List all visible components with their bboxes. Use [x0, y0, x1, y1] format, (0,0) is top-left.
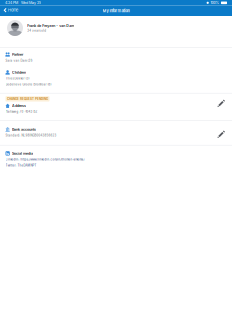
staticText: Social media — [12, 151, 33, 156]
staticText: Thies Dekker (3) — [5, 77, 29, 80]
staticText: 4:24 PM — [5, 1, 18, 5]
button[interactable]: Edit bank accounts — [215, 127, 228, 141]
staticText: Frank de Freyzen - van Dam — [27, 24, 74, 28]
staticText: Sara van Dam (31) — [5, 59, 32, 62]
staticText: Standard: NL98INGB0043856623 — [5, 134, 56, 137]
staticText: Twitter: TheDAMNPT — [5, 164, 36, 167]
staticText: Bank accounts — [12, 127, 36, 132]
staticText: Children — [12, 70, 26, 75]
staticText: 34 years old — [27, 29, 46, 32]
button[interactable]: Edit address — [215, 96, 228, 110]
staticText: Address — [12, 104, 26, 108]
staticText: LinkedIn: https://www.linkedin.com/in/th… — [5, 158, 84, 161]
staticText: Wed May 25 — [21, 1, 41, 5]
button[interactable]: Home — [0, 6, 22, 16]
staticText: Godelieve Groote Bromfoar (8) — [5, 83, 51, 86]
staticText: CHANGE REQUEST PENDING — [7, 97, 48, 101]
staticText: 100% — [210, 1, 219, 5]
staticText: Partner — [12, 52, 23, 57]
staticText: Home — [8, 8, 18, 13]
staticText: Hartsweg 70 -1043 BZ — [5, 110, 37, 113]
staticText: My Information — [102, 8, 129, 13]
